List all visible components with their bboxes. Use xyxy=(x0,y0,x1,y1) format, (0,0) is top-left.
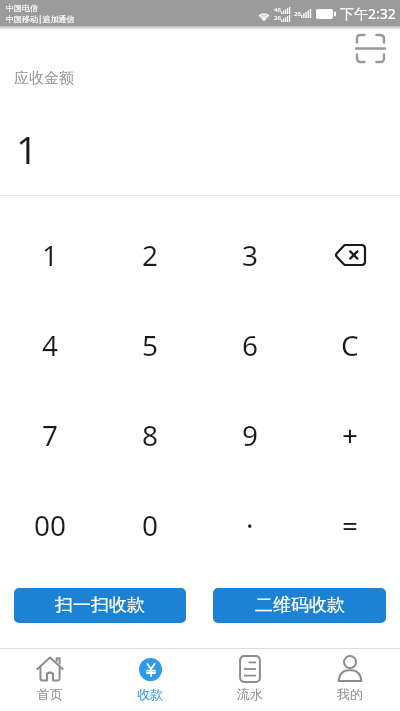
button[interactable]: 7 xyxy=(0,390,100,480)
staticText: 7 xyxy=(42,416,59,454)
staticText: 26 xyxy=(274,14,281,22)
staticText: 8 xyxy=(142,416,159,454)
button[interactable]: 00 xyxy=(0,480,100,570)
button[interactable]: 5 xyxy=(100,300,200,390)
button[interactable]: 扫一扫收款 xyxy=(14,588,186,623)
staticText: 中国移动|追加通信 xyxy=(6,13,75,24)
staticText: 00 xyxy=(34,506,67,544)
button[interactable] xyxy=(357,35,384,62)
staticText: 4 xyxy=(42,326,59,364)
button[interactable] xyxy=(300,210,400,300)
staticText: 二维码收款 xyxy=(255,594,345,617)
staticText: 9 xyxy=(242,416,259,454)
staticText: = xyxy=(342,506,359,544)
staticText: 1 xyxy=(16,123,38,175)
staticText: 6 xyxy=(242,326,259,364)
staticText: 收款 xyxy=(137,686,163,702)
button[interactable]: + xyxy=(300,390,400,480)
button[interactable]: 8 xyxy=(100,390,200,480)
staticText: 流水 xyxy=(237,686,263,702)
button[interactable]: 3 xyxy=(200,210,300,300)
staticText: + xyxy=(342,416,359,454)
button[interactable]: 我的 xyxy=(300,649,400,711)
button[interactable]: 1 xyxy=(0,210,100,300)
staticText: 46 xyxy=(274,6,281,14)
button[interactable]: 2 xyxy=(100,210,200,300)
staticText: 0 xyxy=(142,506,159,544)
staticText: 1 xyxy=(42,236,59,274)
button[interactable]: 二维码收款 xyxy=(213,588,386,623)
staticText: 应收金额 xyxy=(14,69,74,88)
staticText: 5 xyxy=(142,326,159,364)
button[interactable]: 流水 xyxy=(200,649,300,711)
button[interactable]: 收款 xyxy=(100,649,200,711)
button[interactable]: = xyxy=(300,480,400,570)
staticText: 扫一扫收款 xyxy=(55,594,145,617)
button[interactable]: 0 xyxy=(100,480,200,570)
staticText: 首页 xyxy=(37,686,63,702)
staticText: 3 xyxy=(242,236,259,274)
staticText: 我的 xyxy=(337,686,363,702)
button[interactable]: 6 xyxy=(200,300,300,390)
button[interactable]: 首页 xyxy=(0,649,100,711)
staticText: C xyxy=(341,326,359,364)
button[interactable]: C xyxy=(300,300,400,390)
staticText: 中国电信 xyxy=(6,3,38,13)
staticText: 2 xyxy=(142,236,159,274)
button[interactable]: · xyxy=(200,480,300,570)
staticText: · xyxy=(246,506,254,544)
staticText: 下午2:32 xyxy=(340,4,396,23)
button[interactable]: 4 xyxy=(0,300,100,390)
button[interactable]: 9 xyxy=(200,390,300,480)
staticText: 26 xyxy=(294,10,301,18)
